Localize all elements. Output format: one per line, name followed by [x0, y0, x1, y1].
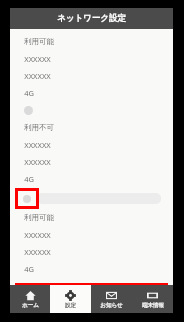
- staticText: XXXXXX: [24, 71, 51, 81]
- button[interactable]: Select highlighted network: [15, 188, 39, 209]
- button[interactable]: 設定: [50, 285, 91, 313]
- button[interactable]: 保存: [18, 286, 165, 305]
- staticText: XXXXXX: [24, 247, 51, 257]
- staticText: ネットワーク設定: [57, 13, 126, 24]
- staticText: 利用不可: [24, 123, 54, 132]
- button[interactable]: 端末情報: [132, 285, 173, 313]
- staticText: XXXXXX: [24, 140, 51, 150]
- button[interactable]: ホーム: [10, 285, 50, 313]
- staticText: 4G: [24, 88, 34, 98]
- staticText: 4G: [24, 264, 34, 274]
- button[interactable]: お知らせ: [91, 285, 132, 313]
- staticText: 端末情報: [142, 302, 164, 309]
- staticText: ホーム: [22, 302, 39, 309]
- staticText: XXXXXX: [24, 157, 51, 167]
- staticText: XXXXXX: [24, 230, 51, 240]
- staticText: 利用可能: [24, 213, 54, 222]
- button[interactable]: Select network option: [10, 101, 173, 119]
- staticText: 利用可能: [24, 37, 54, 46]
- staticText: XXXXXX: [24, 54, 51, 64]
- staticText: 4G: [24, 174, 34, 184]
- staticText: お知らせ: [100, 302, 123, 309]
- staticText: 設定: [65, 302, 76, 309]
- staticText: 保存: [84, 291, 100, 301]
